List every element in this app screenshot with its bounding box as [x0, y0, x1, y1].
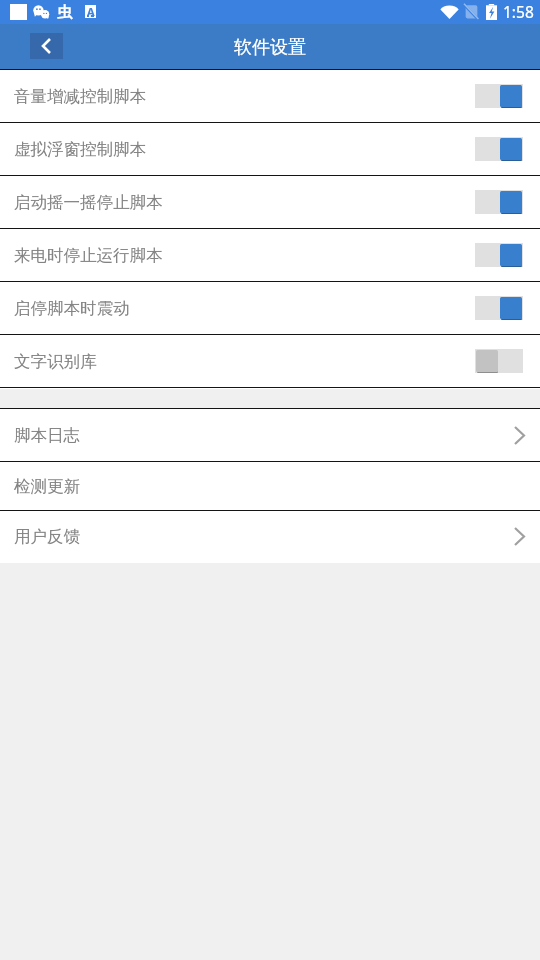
staticText: 检测更新 — [14, 476, 80, 497]
button[interactable]: 用户反馈 — [0, 511, 540, 563]
button[interactable]: Toggle on — [475, 243, 523, 267]
button[interactable]: Toggle on — [475, 190, 523, 214]
staticText: 音量增减控制脚本 — [14, 86, 146, 107]
staticText: 虚拟浮窗控制脚本 — [14, 139, 146, 160]
staticText: 软件设置 — [234, 36, 306, 59]
button[interactable]: 文字识别库 — [0, 335, 540, 388]
button[interactable]: 音量增减控制脚本 — [0, 70, 540, 123]
staticText: 启停脚本时震动 — [14, 298, 130, 319]
button[interactable]: 来电时停止运行脚本 — [0, 229, 540, 282]
staticText: 虫 — [57, 3, 72, 22]
staticText: 来电时停止运行脚本 — [14, 245, 163, 266]
button[interactable]: 虚拟浮窗控制脚本 — [0, 123, 540, 176]
staticText: 用户反馈 — [14, 526, 80, 547]
staticText: 启动摇一摇停止脚本 — [14, 192, 163, 213]
button[interactable]: Toggle on — [475, 296, 523, 320]
button[interactable]: Toggle on — [475, 84, 523, 108]
button[interactable]: 启动摇一摇停止脚本 — [0, 176, 540, 229]
button[interactable]: Toggle off — [475, 349, 523, 373]
button[interactable]: 检测更新 — [0, 462, 540, 511]
staticText: A — [87, 4, 95, 17]
button[interactable]: 脚本日志 — [0, 409, 540, 462]
staticText: 文字识别库 — [14, 351, 97, 372]
staticText: 脚本日志 — [14, 425, 80, 446]
button[interactable]: Toggle on — [475, 137, 523, 161]
button[interactable]: 启停脚本时震动 — [0, 282, 540, 335]
staticText: 1:58 — [503, 1, 534, 22]
button[interactable]: Back — [30, 33, 63, 59]
